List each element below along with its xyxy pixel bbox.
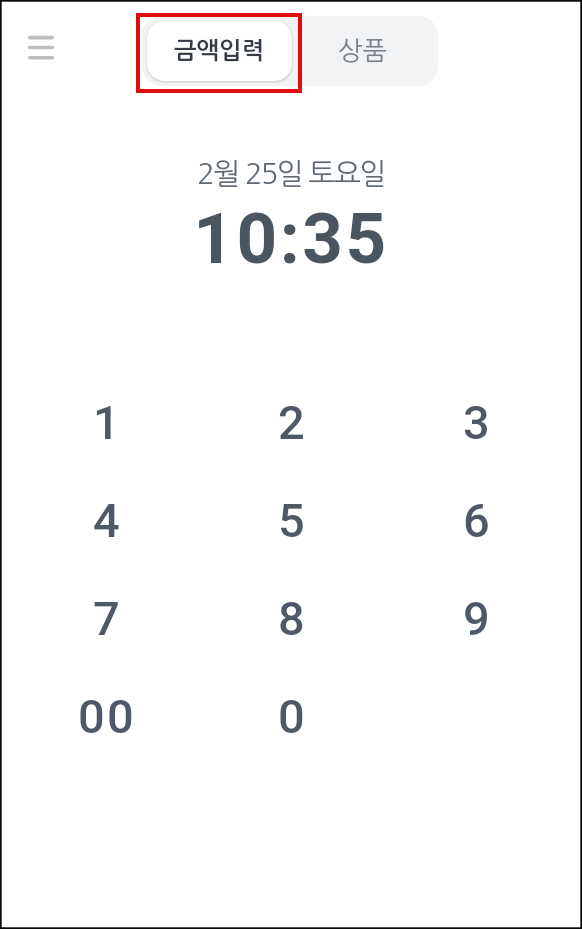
staticText: 0 xyxy=(278,689,307,744)
button[interactable]: 7 xyxy=(12,569,198,667)
button[interactable]: 6 xyxy=(383,471,568,569)
staticText: 3 xyxy=(463,395,492,450)
staticText: 10:35 xyxy=(0,197,582,280)
button[interactable]: 00 xyxy=(12,667,198,765)
button[interactable]: Open navigation menu xyxy=(16,23,66,71)
staticText: 5 xyxy=(278,493,307,548)
button[interactable]: 1 xyxy=(12,373,198,471)
staticText: 2 xyxy=(278,395,307,450)
button[interactable]: 8 xyxy=(198,569,383,667)
staticText: 7 xyxy=(93,591,122,646)
button[interactable]: 5 xyxy=(198,471,383,569)
staticText: 1 xyxy=(93,395,122,450)
staticText: 상품 xyxy=(338,38,387,64)
button[interactable]: 4 xyxy=(12,471,198,569)
staticText: 2월 25일 토요일 xyxy=(0,159,582,188)
button[interactable]: 3 xyxy=(383,373,568,471)
staticText: 6 xyxy=(463,493,492,548)
staticText: 00 xyxy=(78,689,136,744)
staticText: 8 xyxy=(278,591,307,646)
button[interactable]: 금액입력 xyxy=(147,21,292,81)
button[interactable]: 9 xyxy=(383,569,568,667)
staticText: 9 xyxy=(463,591,492,646)
button[interactable]: 상품 xyxy=(292,21,433,81)
button[interactable]: 0 xyxy=(198,667,383,765)
button[interactable]: 2 xyxy=(198,373,383,471)
staticText: 금액입력 xyxy=(174,39,265,63)
staticText: 4 xyxy=(93,493,122,548)
